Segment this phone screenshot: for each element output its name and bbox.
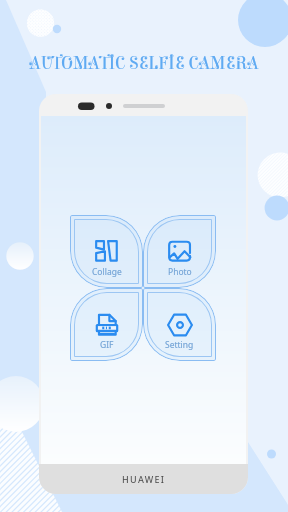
- staticText: Photo: [168, 266, 192, 278]
- button[interactable]: Photo: [143, 215, 216, 288]
- staticText: GIF: [100, 339, 114, 351]
- staticText: HUAWEI: [122, 473, 166, 485]
- button[interactable]: Setting: [143, 288, 216, 361]
- button[interactable]: GIF: [70, 288, 143, 361]
- staticText: Setting: [165, 339, 194, 351]
- button[interactable]: Collage: [70, 215, 143, 288]
- staticText: AUTOMATIC SELFIE CAMERA: [0, 53, 288, 74]
- staticText: Collage: [92, 266, 122, 278]
